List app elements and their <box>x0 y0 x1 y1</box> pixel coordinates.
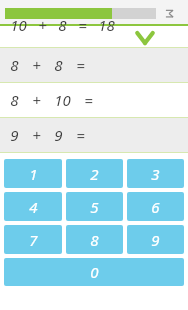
button[interactable]: 4 <box>4 192 62 221</box>
button[interactable]: 0 <box>4 258 184 286</box>
staticText: 4 <box>29 197 38 217</box>
staticText: 2 <box>90 164 99 184</box>
button[interactable]: 5 <box>66 192 123 221</box>
staticText: + <box>32 55 41 75</box>
button[interactable]: Menu <box>163 7 175 19</box>
staticText: = <box>78 15 87 35</box>
button[interactable]: 8 <box>66 225 123 254</box>
staticText: 1 <box>29 164 38 184</box>
staticText: 3 <box>151 164 160 184</box>
button[interactable]: 9 <box>0 118 188 152</box>
staticText: + <box>32 125 41 145</box>
staticText: + <box>32 90 41 110</box>
button[interactable]: 9 <box>127 225 184 254</box>
button[interactable]: 2 <box>66 159 123 188</box>
button[interactable]: 8 <box>0 48 188 82</box>
staticText: = <box>76 125 85 145</box>
staticText: 8 <box>54 55 63 75</box>
staticText: 5 <box>90 197 99 217</box>
button[interactable]: 6 <box>127 192 184 221</box>
staticText: 8 <box>10 90 19 110</box>
staticText: 10 <box>54 90 71 110</box>
button[interactable]: Correct <box>135 28 155 48</box>
staticText: 6 <box>151 197 160 217</box>
staticText: 8 <box>10 55 19 75</box>
button[interactable]: 1 <box>4 159 62 188</box>
staticText: = <box>84 90 93 110</box>
staticText: 10 <box>10 15 27 35</box>
staticText: 9 <box>54 125 63 145</box>
button[interactable]: 8 <box>0 83 188 117</box>
staticText: = <box>76 55 85 75</box>
staticText: 18 <box>98 15 115 35</box>
button[interactable]: 3 <box>127 159 184 188</box>
staticText: 9 <box>151 230 160 250</box>
button[interactable]: 10 <box>0 26 188 47</box>
staticText: 0 <box>90 262 99 282</box>
staticText: 8 <box>90 230 99 250</box>
staticText: 7 <box>29 230 38 250</box>
staticText: 8 <box>58 15 67 35</box>
button[interactable]: 7 <box>4 225 62 254</box>
staticText: + <box>38 15 47 35</box>
staticText: 9 <box>10 125 19 145</box>
